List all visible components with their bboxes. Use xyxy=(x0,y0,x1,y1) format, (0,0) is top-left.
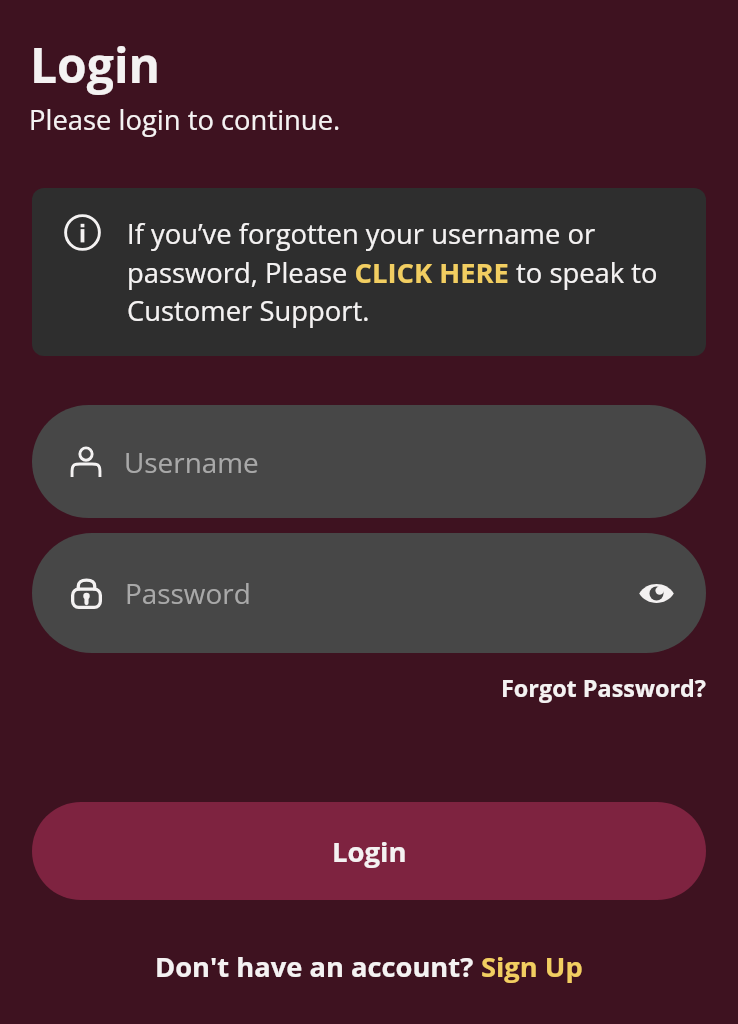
button[interactable]: Username xyxy=(32,405,706,518)
button[interactable]: Don't have an account? xyxy=(149,940,589,993)
staticText: Sign Up xyxy=(481,948,583,985)
staticText: Login xyxy=(332,833,407,870)
button[interactable]: Forgot Password? xyxy=(500,663,706,713)
staticText: Login xyxy=(30,32,161,97)
staticText: Please login to continue. xyxy=(29,101,341,138)
staticText: Username xyxy=(124,443,259,481)
button[interactable]: Show password xyxy=(634,571,678,615)
button[interactable]: Login xyxy=(32,802,706,900)
staticText: If you’ve forgotten your username or pas… xyxy=(127,215,672,329)
staticText: Password xyxy=(125,574,634,612)
staticText: Don't have an account? xyxy=(155,948,481,985)
button[interactable]: Password xyxy=(32,533,706,653)
button[interactable]: If you’ve forgotten your username or pas… xyxy=(32,188,706,356)
